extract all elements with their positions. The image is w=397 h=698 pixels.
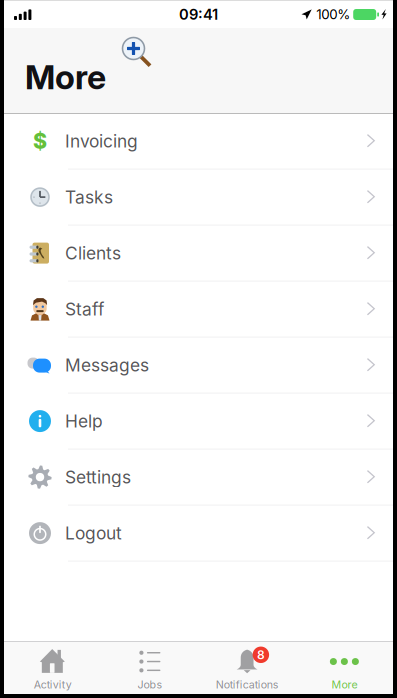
- button[interactable]: 8: [198, 642, 296, 694]
- button[interactable]: Logout: [4, 506, 393, 562]
- button[interactable]: More: [296, 642, 393, 694]
- button[interactable]: Activity: [4, 642, 101, 694]
- staticText: Tasks: [65, 187, 113, 208]
- staticText: $: [33, 128, 47, 154]
- staticText: 8: [257, 647, 265, 662]
- staticText: Invoicing: [65, 131, 138, 152]
- staticText: More: [25, 57, 106, 97]
- button[interactable]: Help: [4, 394, 393, 450]
- button[interactable]: Settings: [4, 450, 393, 506]
- staticText: Settings: [65, 467, 131, 488]
- button[interactable]: Messages: [4, 338, 393, 394]
- staticText: Jobs: [137, 678, 162, 691]
- staticText: Notifications: [216, 678, 279, 691]
- button[interactable]: $: [4, 114, 393, 170]
- button[interactable]: Staff: [4, 282, 393, 338]
- staticText: Logout: [65, 523, 122, 544]
- staticText: More: [331, 678, 357, 691]
- button[interactable]: Jobs: [101, 642, 198, 694]
- staticText: Activity: [34, 678, 72, 691]
- staticText: Clients: [65, 243, 121, 264]
- staticText: 100%: [316, 6, 350, 22]
- button[interactable]: Search: [106, 28, 156, 71]
- staticText: Staff: [65, 299, 104, 320]
- button[interactable]: Tasks: [4, 170, 393, 226]
- staticText: 09:41: [179, 6, 218, 23]
- staticText: Help: [65, 411, 103, 432]
- button[interactable]: Clients: [4, 226, 393, 282]
- staticText: Messages: [65, 355, 149, 376]
